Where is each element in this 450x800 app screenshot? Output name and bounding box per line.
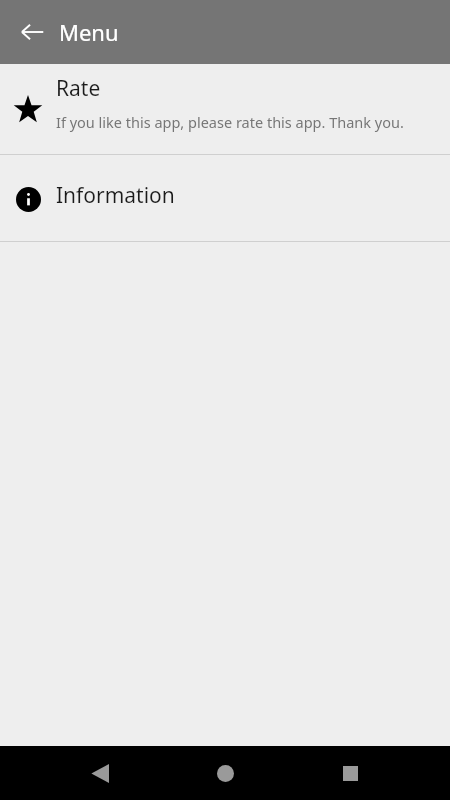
button[interactable]: Back [18,18,46,46]
button[interactable]: Rate [0,64,450,154]
button[interactable]: Back [78,759,122,787]
staticText: Menu [59,17,119,47]
staticText: Rate [56,74,101,103]
button[interactable]: Recents [328,759,372,787]
staticText: Information [56,181,175,210]
button[interactable]: Information [0,155,450,241]
button[interactable]: Home [203,759,247,787]
staticText: If you like this app, please rate this a… [56,112,404,132]
